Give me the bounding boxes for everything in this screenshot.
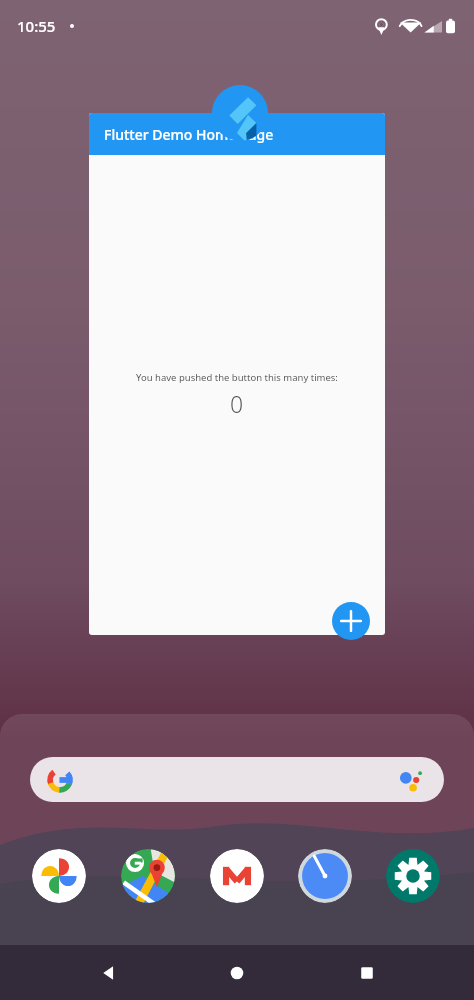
button[interactable]: Search	[30, 757, 444, 802]
button[interactable]: Settings	[386, 849, 440, 903]
staticText: 10:55	[17, 16, 56, 36]
button[interactable]: Increment	[332, 602, 370, 640]
button[interactable]: Back	[92, 956, 126, 990]
staticText: 0	[230, 388, 244, 419]
other: Flutter Demo app icon	[212, 85, 268, 141]
staticText: Flutter Demo Home Page	[104, 125, 274, 144]
button[interactable]: Clock	[298, 849, 352, 903]
button[interactable]: Recent apps	[350, 956, 384, 990]
button[interactable]: Photos	[32, 849, 86, 903]
button[interactable]: Gmail	[210, 849, 264, 903]
button[interactable]: Home	[220, 956, 254, 990]
staticText: You have pushed the button this many tim…	[136, 371, 338, 384]
button[interactable]: Flutter Demo Home Page	[89, 113, 385, 635]
button[interactable]: Maps	[121, 849, 175, 903]
